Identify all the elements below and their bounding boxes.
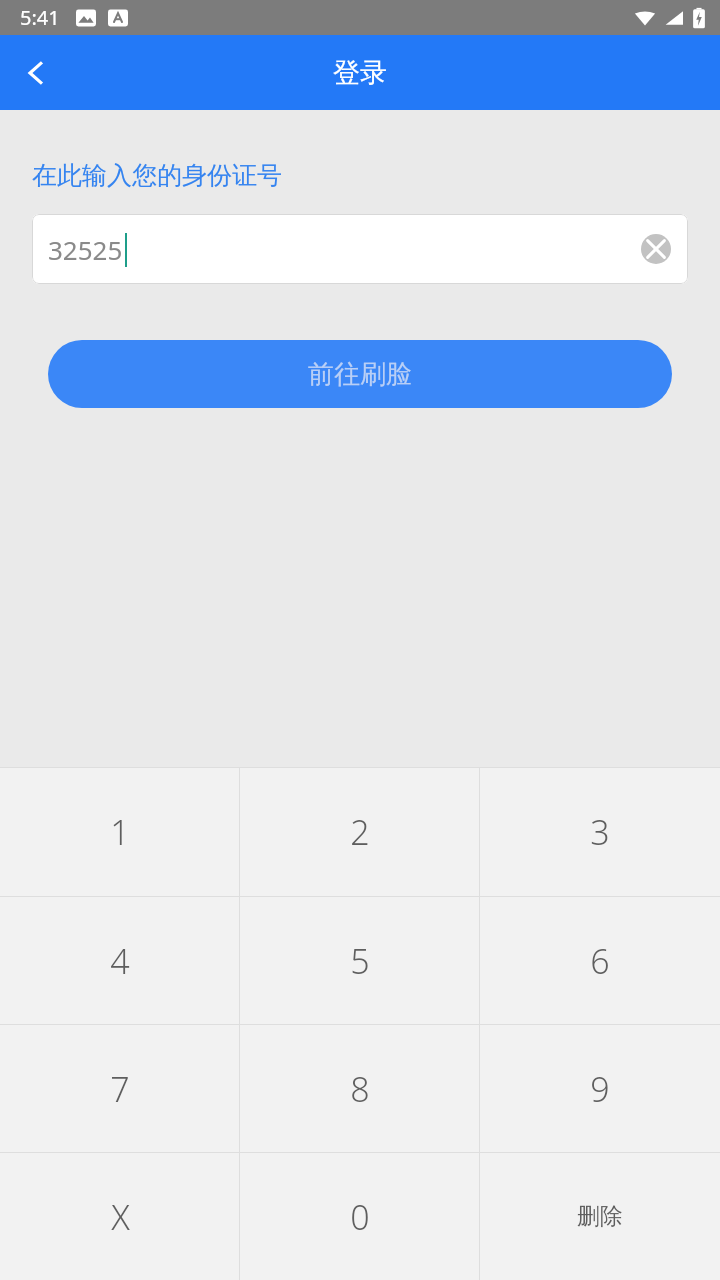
staticText: 前往刷脸	[308, 358, 412, 391]
button[interactable]: 5	[240, 897, 480, 1024]
button[interactable]: X	[0, 1153, 240, 1280]
staticText: 8	[350, 1066, 370, 1112]
staticText: 32525	[48, 232, 123, 267]
staticText: 4	[110, 938, 130, 984]
staticText: 5	[350, 938, 370, 984]
button[interactable]: Clear text	[634, 227, 678, 271]
button[interactable]: 2	[240, 768, 480, 896]
staticText: 在此输入您的身份证号	[32, 160, 282, 191]
staticText: 6	[590, 938, 610, 984]
button[interactable]: 7	[0, 1025, 240, 1152]
button[interactable]: 4	[0, 897, 240, 1024]
staticText: 5:41	[20, 4, 60, 31]
staticText: 9	[590, 1066, 610, 1112]
button[interactable]: 6	[480, 897, 720, 1024]
button[interactable]: 删除	[480, 1153, 720, 1280]
button[interactable]: 3	[480, 768, 720, 896]
staticText: 2	[350, 809, 370, 855]
button[interactable]: 0	[240, 1153, 480, 1280]
button[interactable]: 8	[240, 1025, 480, 1152]
staticText: 1	[110, 809, 130, 855]
button[interactable]: Back	[0, 37, 72, 109]
button[interactable]: 9	[480, 1025, 720, 1152]
staticText: 删除	[577, 1202, 623, 1231]
staticText: 3	[590, 809, 610, 855]
staticText: 登录	[333, 56, 387, 90]
button[interactable]: 32525	[32, 214, 688, 284]
staticText: 0	[350, 1194, 370, 1240]
staticText: X	[111, 1194, 130, 1240]
button[interactable]: 1	[0, 768, 240, 896]
button[interactable]: 前往刷脸	[48, 340, 672, 408]
staticText: 7	[110, 1066, 130, 1112]
